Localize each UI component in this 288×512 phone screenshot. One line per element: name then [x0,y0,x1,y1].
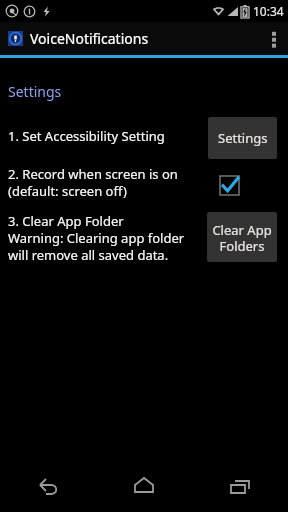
button[interactable]: Settings [208,117,277,159]
button[interactable]: Recent apps [192,460,288,512]
staticText: Settings [218,129,268,147]
staticText: 3. Clear App Folder Warning: Clearing ap… [8,212,207,264]
button[interactable]: Record when screen is on [218,174,240,196]
staticText: 2. Record when screen is on (default: sc… [8,165,218,200]
button[interactable]: Back [0,460,96,512]
staticText: Settings [8,82,62,101]
button[interactable]: Clear App Folders [207,212,277,262]
button[interactable]: Home [96,460,192,512]
staticText: Clear App Folders [212,221,272,254]
staticText: 1. Set Accessibility Setting [8,127,208,145]
button[interactable]: More options [260,22,288,55]
staticText: 10:34 [253,3,284,19]
staticText: VoiceNotifications [30,29,149,48]
